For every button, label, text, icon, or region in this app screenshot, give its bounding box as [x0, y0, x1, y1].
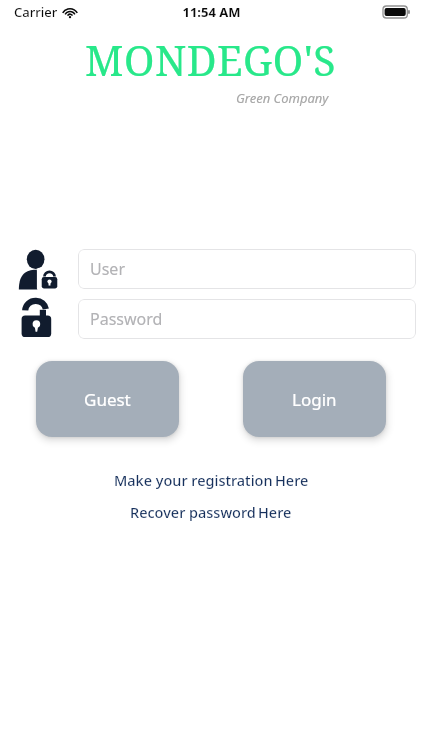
- staticText: Login: [292, 388, 337, 411]
- staticText: Recover password: [130, 502, 256, 522]
- staticText: Here: [275, 470, 309, 490]
- staticText: Carrier: [14, 3, 58, 21]
- staticText: Green Company: [236, 89, 329, 107]
- staticText: Password: [90, 308, 163, 330]
- staticText: Here: [258, 502, 292, 522]
- button[interactable]: Recover password: [126, 501, 296, 523]
- button[interactable]: Guest: [36, 361, 179, 437]
- other: User: [18, 248, 60, 290]
- staticText: 11:54 AM: [182, 3, 241, 21]
- button[interactable]: Make your registration: [110, 469, 313, 491]
- staticText: Make your registration: [114, 470, 273, 490]
- button[interactable]: Login: [243, 361, 386, 437]
- button[interactable]: Password: [78, 299, 416, 339]
- staticText: Guest: [84, 388, 131, 411]
- staticText: MONDEGO'S: [85, 32, 337, 88]
- other: Password: [19, 299, 59, 339]
- staticText: User: [90, 258, 125, 280]
- button[interactable]: User: [78, 249, 416, 289]
